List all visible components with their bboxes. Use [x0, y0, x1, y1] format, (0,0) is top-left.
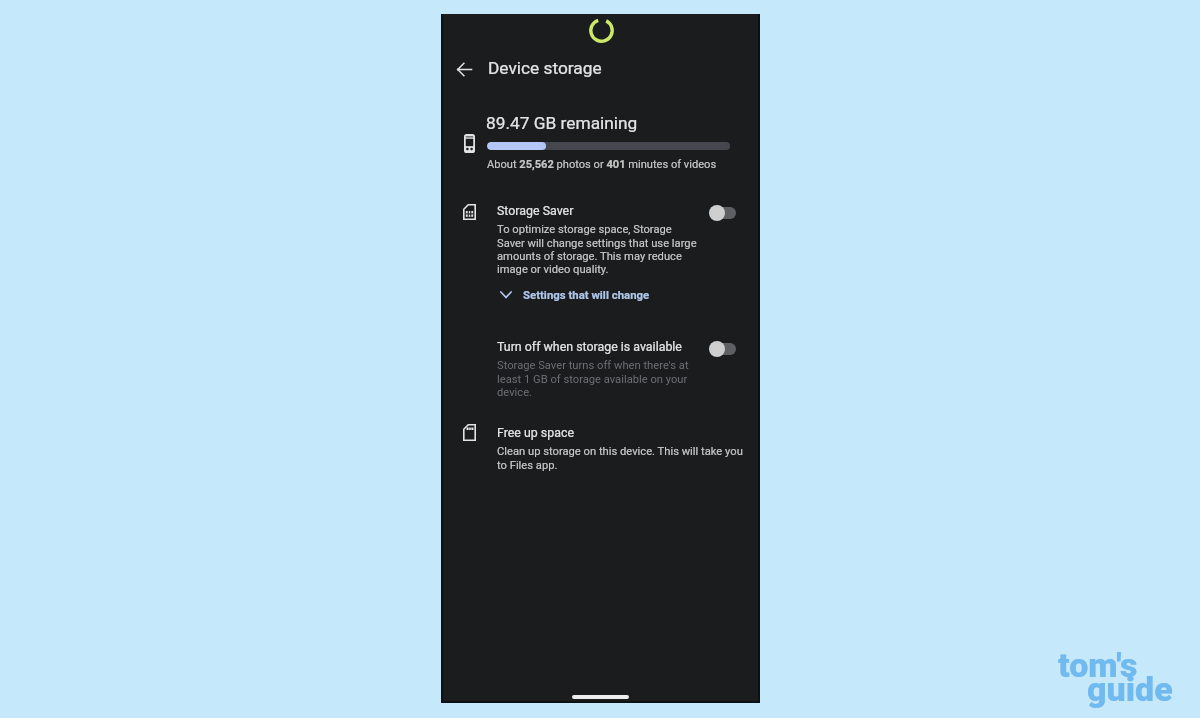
button[interactable]: Settings that will change [500, 288, 650, 301]
staticText: Free up space [497, 425, 574, 440]
staticText: About 25,562 photos or 401 minutes of vi… [487, 158, 717, 171]
staticText: Storage Saver turns off when there's at … [497, 359, 689, 398]
button[interactable]: Turn off when storage is available [705, 337, 739, 359]
staticText: Settings that will change [523, 288, 650, 301]
button[interactable]: Back [446, 51, 483, 88]
staticText: tom's [1058, 645, 1138, 685]
staticText: Clean up storage on this device. This wi… [497, 445, 743, 471]
staticText: Turn off when storage is available [497, 339, 682, 354]
staticText: Storage Saver [497, 203, 574, 218]
button[interactable]: Free up space [441, 422, 760, 476]
staticText: To optimize storage space, Storage Saver… [497, 223, 697, 275]
button[interactable]: Turn off when storage is available [441, 336, 760, 406]
button[interactable]: Storage Saver [441, 200, 760, 312]
staticText: 89.47 GB remaining [486, 113, 638, 133]
staticText: Device storage [488, 58, 602, 78]
staticText: guide [1087, 669, 1173, 709]
button[interactable]: Storage Saver [705, 201, 739, 223]
